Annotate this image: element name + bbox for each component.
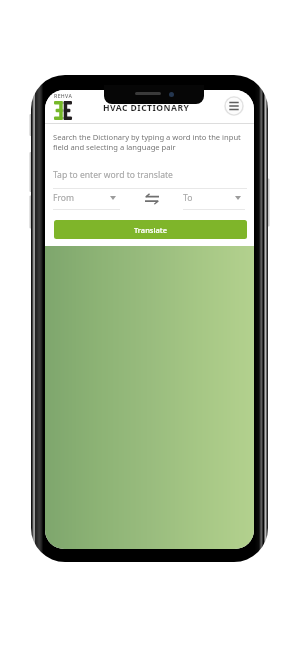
button[interactable]: Translate bbox=[54, 220, 247, 239]
staticText: From bbox=[53, 192, 75, 204]
button[interactable]: Tap to enter word to translate bbox=[53, 169, 247, 189]
staticText: REHVA bbox=[54, 92, 73, 99]
button[interactable]: Swap languages bbox=[120, 192, 183, 206]
button[interactable]: Menu bbox=[224, 96, 244, 116]
staticText: To bbox=[183, 192, 193, 204]
staticText: Tap to enter word to translate bbox=[53, 169, 173, 181]
staticText: Search the Dictionary by typing a word i… bbox=[53, 132, 247, 152]
button[interactable]: From bbox=[53, 192, 120, 210]
button[interactable]: To bbox=[183, 192, 245, 210]
staticText: Translate bbox=[134, 225, 167, 235]
staticText: HVAC DICTIONARY bbox=[103, 102, 190, 114]
